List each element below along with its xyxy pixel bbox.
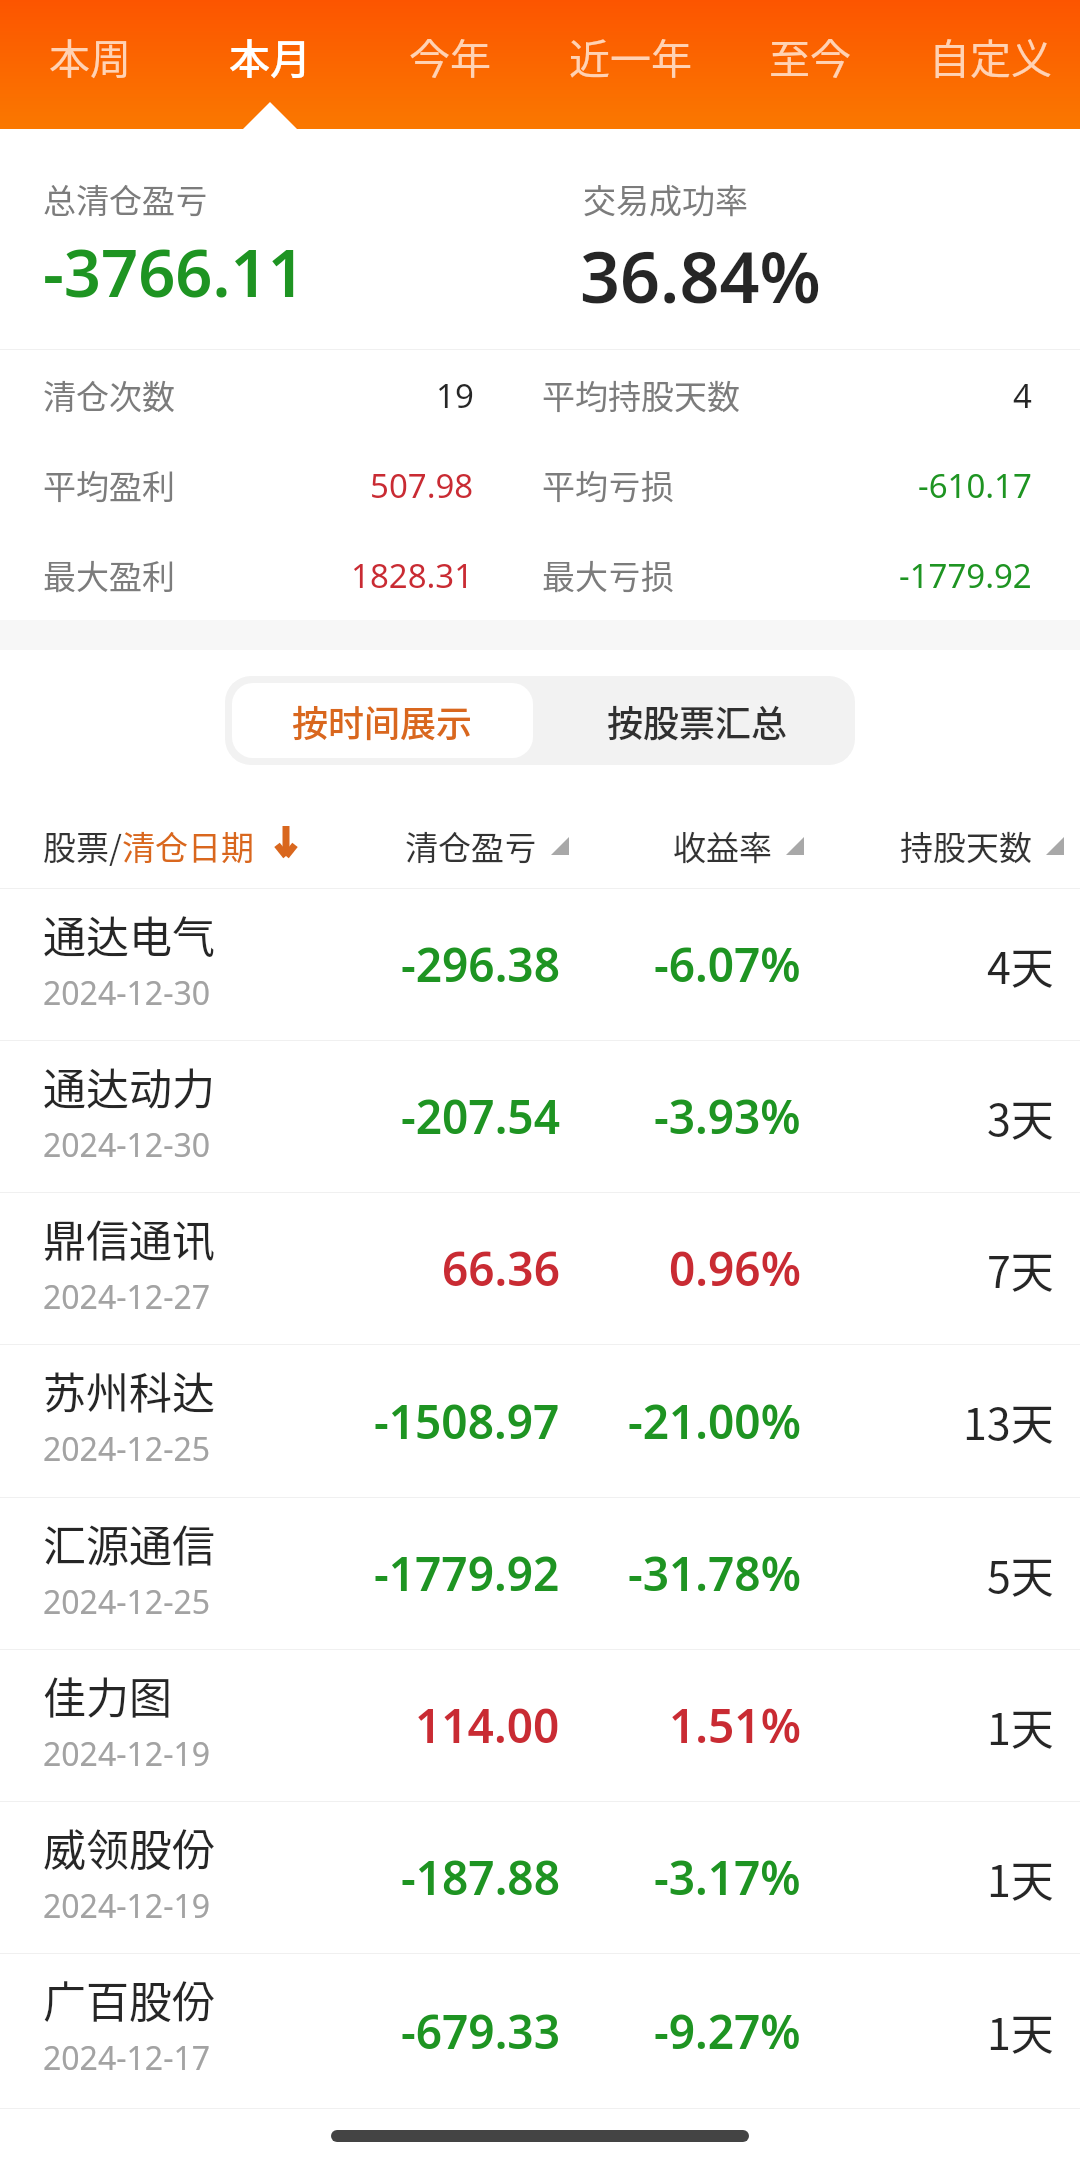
staticText: 收益率 [673,822,772,870]
staticText: 今年 [409,26,491,85]
staticText: 平均持股天数 [542,371,740,419]
staticText: 4天 [987,934,1054,996]
button[interactable]: 通达电气 [0,889,1080,1040]
staticText: 2024-12-27 [43,1275,211,1319]
staticText: 鼎信通讯 [43,1207,215,1269]
staticText: -6.07% [654,933,801,996]
staticText: 13天 [963,1390,1054,1452]
staticText: 通达电气 [43,903,215,965]
staticText: 平均盈利 [43,461,175,509]
staticText: 7天 [987,1238,1054,1300]
staticText: 2024-12-30 [43,971,211,1015]
staticText: 1天 [987,1695,1054,1757]
button[interactable]: 按股票汇总 [540,676,855,765]
button[interactable]: 本月 [180,0,360,129]
staticText: 本月 [229,26,311,85]
staticText: 至今 [769,26,851,85]
staticText: 2024-12-25 [43,1427,211,1471]
button[interactable]: 近一年 [540,0,720,129]
staticText: 19 [436,373,474,418]
button[interactable]: 威领股份 [0,1802,1080,1953]
staticText: -3.93% [654,1085,801,1148]
button[interactable]: 佳力图 [0,1650,1080,1801]
button[interactable]: 汇源通信 [0,1498,1080,1649]
staticText: 2024-12-17 [43,2036,211,2080]
staticText: -1779.92 [374,1542,560,1605]
staticText: 通达动力 [43,1055,215,1117]
staticText: 2024-12-19 [43,1732,211,1776]
staticText: 2024-12-25 [43,1580,211,1624]
staticText: 股票/ [43,822,122,870]
staticText: -679.33 [401,2000,560,2063]
staticText: 最大亏损 [542,551,674,599]
button[interactable]: 鼎信通讯 [0,1193,1080,1344]
staticText: -610.17 [918,463,1032,508]
staticText: 按股票汇总 [607,695,788,747]
staticText: 持股天数 [900,822,1032,870]
staticText: -1779.92 [899,553,1032,598]
staticText: 清仓盈亏 [405,822,537,870]
staticText: -207.54 [401,1085,560,1148]
staticText: 清仓日期 [122,822,254,870]
staticText: 1天 [987,2000,1054,2062]
staticText: -9.27% [654,2000,801,2063]
staticText: 威领股份 [43,1816,215,1878]
button[interactable]: 本周 [0,0,180,129]
staticText: 苏州科达 [43,1359,215,1421]
staticText: -31.78% [628,1542,801,1605]
staticText: 507.98 [370,463,474,508]
staticText: 114.00 [415,1694,560,1757]
staticText: 5天 [987,1543,1054,1605]
staticText: 清仓次数 [43,371,175,419]
button[interactable]: 按时间展示 [232,683,533,758]
button[interactable]: 苏州科达 [0,1345,1080,1497]
staticText: 4 [1013,373,1032,418]
staticText: -21.00% [628,1390,801,1453]
staticText: -3.17% [654,1846,801,1909]
staticText: -1508.97 [374,1390,560,1453]
staticText: 1.51% [669,1694,801,1757]
staticText: 广百股份 [43,1968,215,2030]
staticText: 2024-12-30 [43,1123,211,1167]
staticText: 36.84% [580,228,821,323]
staticText: 近一年 [569,26,692,85]
button[interactable]: 通达动力 [0,1041,1080,1192]
staticText: 自定义 [929,26,1052,85]
button[interactable]: 今年 [360,0,540,129]
button[interactable]: 自定义 [900,0,1080,129]
button[interactable]: 广百股份 [0,1954,1080,2108]
other: Sort descending [275,825,297,857]
staticText: 平均亏损 [542,461,674,509]
staticText: 按时间展示 [292,695,473,747]
button[interactable]: 至今 [720,0,900,129]
staticText: 本周 [49,26,131,85]
staticText: 汇源通信 [43,1512,215,1574]
staticText: -296.38 [401,933,560,996]
staticText: 66.36 [442,1237,560,1300]
staticText: 2024-12-19 [43,1884,211,1928]
staticText: 总清仓盈亏 [43,175,208,223]
staticText: 3天 [987,1086,1054,1148]
staticText: -187.88 [401,1846,560,1909]
staticText: 1天 [987,1847,1054,1909]
staticText: -3766.11 [43,228,305,317]
staticText: 0.96% [669,1237,801,1300]
staticText: 交易成功率 [583,175,748,223]
staticText: 佳力图 [43,1664,172,1726]
staticText: 最大盈利 [43,551,175,599]
staticText: 1828.31 [351,553,474,598]
